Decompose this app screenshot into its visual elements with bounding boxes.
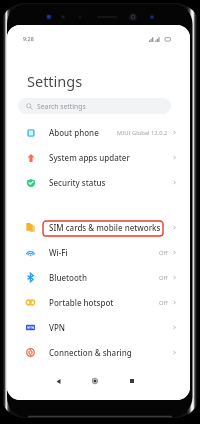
staticText: Off	[159, 299, 168, 307]
button[interactable]: About phone	[7, 120, 190, 145]
button[interactable]: Search settings	[18, 98, 171, 114]
staticText: Off	[159, 249, 168, 257]
staticText: VPN	[49, 322, 66, 333]
staticText: 9:28	[23, 35, 34, 42]
staticText: Connection & sharing	[49, 347, 132, 358]
staticText: MIUI Global 12.0.2	[117, 129, 168, 137]
staticText: Settings	[27, 71, 83, 91]
button[interactable]: Back	[51, 374, 65, 388]
button[interactable]: VPN	[7, 315, 190, 340]
button[interactable]: Portable hotspot	[7, 290, 190, 315]
button[interactable]: Recents	[125, 374, 139, 388]
staticText: Off	[159, 274, 168, 282]
staticText: Security status	[49, 177, 106, 188]
button[interactable]: Security status	[7, 170, 190, 195]
staticText: Wi-Fi	[49, 247, 68, 258]
staticText: SIM cards & mobile networks	[49, 222, 161, 233]
staticText: About phone	[49, 127, 99, 138]
button[interactable]: System apps updater	[7, 145, 190, 170]
button[interactable]: Bluetooth	[7, 265, 190, 290]
button[interactable]: Wi-Fi	[7, 240, 190, 265]
button[interactable]: Connection & sharing	[7, 340, 190, 365]
button[interactable]: Home	[88, 374, 102, 388]
staticText: Bluetooth	[49, 272, 87, 283]
staticText: Portable hotspot	[49, 297, 114, 308]
staticText: Search settings	[37, 102, 86, 111]
staticText: System apps updater	[49, 152, 130, 163]
button[interactable]: SIM cards & mobile networks	[7, 215, 190, 240]
